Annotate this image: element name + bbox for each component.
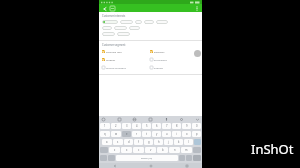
staticText: Savings [157,21,166,24]
button[interactable]: GIF [117,117,122,122]
button[interactable]: t [142,131,151,137]
button[interactable]: Loan Etc [129,26,140,30]
button[interactable]: Recents [185,164,188,167]
button[interactable]: 0 [192,123,201,129]
button[interactable]: Credit [102,26,112,30]
staticText: v [150,148,152,152]
button[interactable]: Enter [193,155,201,161]
button[interactable]: Business [150,49,165,54]
button[interactable]: 5 [142,123,151,129]
button[interactable]: 4 [132,123,141,129]
button[interactable]: y [152,131,161,137]
staticText: k [178,140,180,144]
staticText: t [146,132,147,136]
button[interactable]: h [154,139,163,145]
button[interactable]: b [157,147,168,153]
staticText: 4 [136,124,138,128]
button[interactable]: z [109,147,120,153]
button[interactable]: Scroll handle [194,50,201,57]
button[interactable]: Student [102,57,116,62]
staticText: 2 [115,124,117,128]
button[interactable]: Wallet [144,20,154,24]
button[interactable]: g [144,139,153,145]
button[interactable]: Emoji [101,117,106,122]
button[interactable]: 2 [111,123,121,129]
button[interactable]: a [102,139,112,145]
staticText: Customer segment [102,43,126,47]
button[interactable]: New Baby [102,20,118,24]
button[interactable]: Settings [179,117,184,122]
button[interactable]: Cross Bank [102,32,115,36]
button[interactable]: Back [101,5,108,12]
button[interactable]: Savings [156,20,168,24]
staticText: d [128,140,130,144]
button[interactable]: r [132,131,141,137]
button[interactable]: s [113,139,123,145]
button[interactable]: 9 [182,123,191,129]
button[interactable]: Service Standard [102,65,126,70]
button[interactable]: k [174,139,183,145]
button[interactable]: Retail Offers [117,32,130,36]
button[interactable]: j [164,139,173,145]
button[interactable]: Insurance [114,26,127,30]
button[interactable]: Enrollment [150,57,167,62]
button[interactable]: Personal Info [102,49,122,54]
button[interactable]: Back [113,164,116,167]
button[interactable]: u [162,131,171,137]
staticText: a [106,140,108,144]
button[interactable]: p [192,131,201,137]
staticText: Insurance [115,27,126,30]
button[interactable]: Home [149,164,152,167]
staticText: New Baby [106,21,117,24]
button[interactable]: c [133,147,144,153]
button[interactable]: Expired [150,65,163,70]
staticText: 9 [186,124,188,128]
button[interactable]: Accounts [120,20,133,24]
staticText: Customer interests [102,14,126,18]
staticText: Credit [103,27,110,30]
button[interactable]: e [122,131,131,137]
button[interactable]: m [181,147,192,153]
button[interactable]: 8 [172,123,181,129]
button[interactable]: Enter [194,139,201,145]
button[interactable]: f [134,139,143,145]
button[interactable]: Menu [109,5,116,12]
staticText: f [138,140,139,144]
button[interactable]: x [121,147,132,153]
staticText: English (US) [141,157,153,160]
button[interactable]: d [124,139,133,145]
button[interactable]: Translate [132,117,137,122]
button[interactable]: v [145,147,156,153]
button[interactable]: 6 [152,123,161,129]
staticText: Wallet [145,21,152,24]
button[interactable]: 7 [162,123,171,129]
button[interactable]: n [169,147,180,153]
button[interactable]: l [184,139,193,145]
button[interactable]: o [182,131,191,137]
staticText: z [114,148,116,152]
button[interactable]: w [111,131,121,137]
staticText: Expired [154,66,163,69]
button[interactable]: Voice input [164,117,169,122]
staticText: Loan Etc [130,27,139,30]
button[interactable]: Clipboard [148,117,153,122]
button[interactable]: 1 [100,123,110,129]
button[interactable]: q [100,131,110,137]
button[interactable]: 3 [122,123,131,129]
staticText: u [166,132,168,136]
button[interactable]: Space [116,155,178,161]
staticText: Enrollment [154,58,167,61]
staticText: InShOt [251,140,294,158]
button[interactable]: Car [135,20,142,24]
button[interactable]: Collapse [195,117,200,122]
button[interactable]: i [172,131,181,137]
button[interactable]: More options [193,5,200,12]
staticText: j [168,140,169,144]
staticText: i [176,132,177,136]
